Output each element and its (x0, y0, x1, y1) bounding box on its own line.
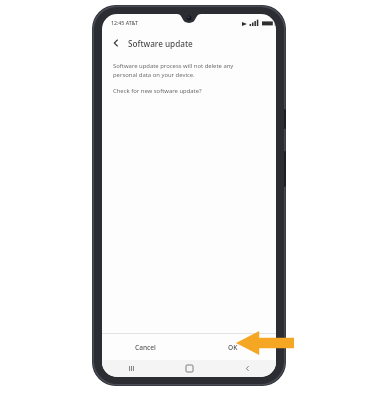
button[interactable]: Back (102, 31, 276, 55)
staticText: Software update process will not delete … (113, 62, 234, 79)
button[interactable]: Recents (102, 360, 160, 377)
button[interactable]: OK (189, 334, 276, 360)
staticText: Cancel (135, 343, 156, 352)
button[interactable]: Back (109, 36, 123, 50)
button[interactable]: Cancel (102, 334, 189, 360)
button[interactable]: Home (160, 360, 218, 377)
button[interactable]: Back (218, 360, 276, 377)
staticText: OK (228, 343, 238, 352)
staticText: Software update (128, 38, 193, 49)
staticText: Check for new software update? (113, 87, 202, 95)
staticText: 12:45 AT&T (111, 19, 138, 26)
